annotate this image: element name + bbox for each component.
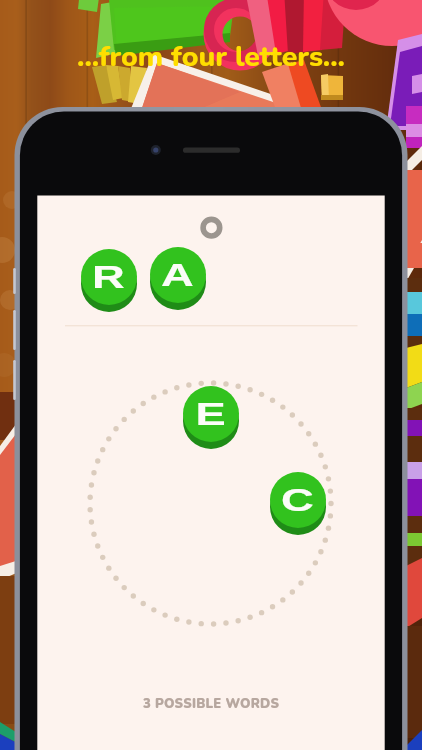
staticText: 3 POSSIBLE WORDS [143,695,280,713]
button[interactable]: C [270,472,326,536]
button[interactable]: R [81,249,137,313]
staticText: E [195,396,227,432]
button[interactable]: E [183,386,239,450]
staticText: R [92,259,126,295]
button[interactable]: A [150,247,206,311]
staticText: ...from four letters... [0,37,422,750]
staticText: C [281,482,315,518]
staticText: A [161,257,195,293]
